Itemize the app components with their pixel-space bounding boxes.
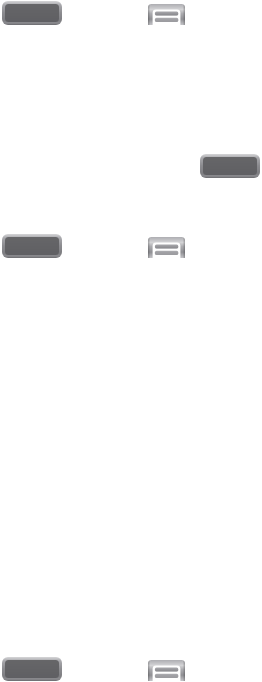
button[interactable]: Button — [2, 234, 62, 258]
button[interactable]: Text field — [148, 237, 185, 258]
button[interactable]: Text field — [148, 660, 185, 681]
button[interactable]: Button — [2, 1, 62, 25]
button[interactable]: Text field — [148, 4, 185, 25]
button[interactable]: Button — [2, 657, 62, 681]
button[interactable]: Button — [200, 154, 260, 178]
